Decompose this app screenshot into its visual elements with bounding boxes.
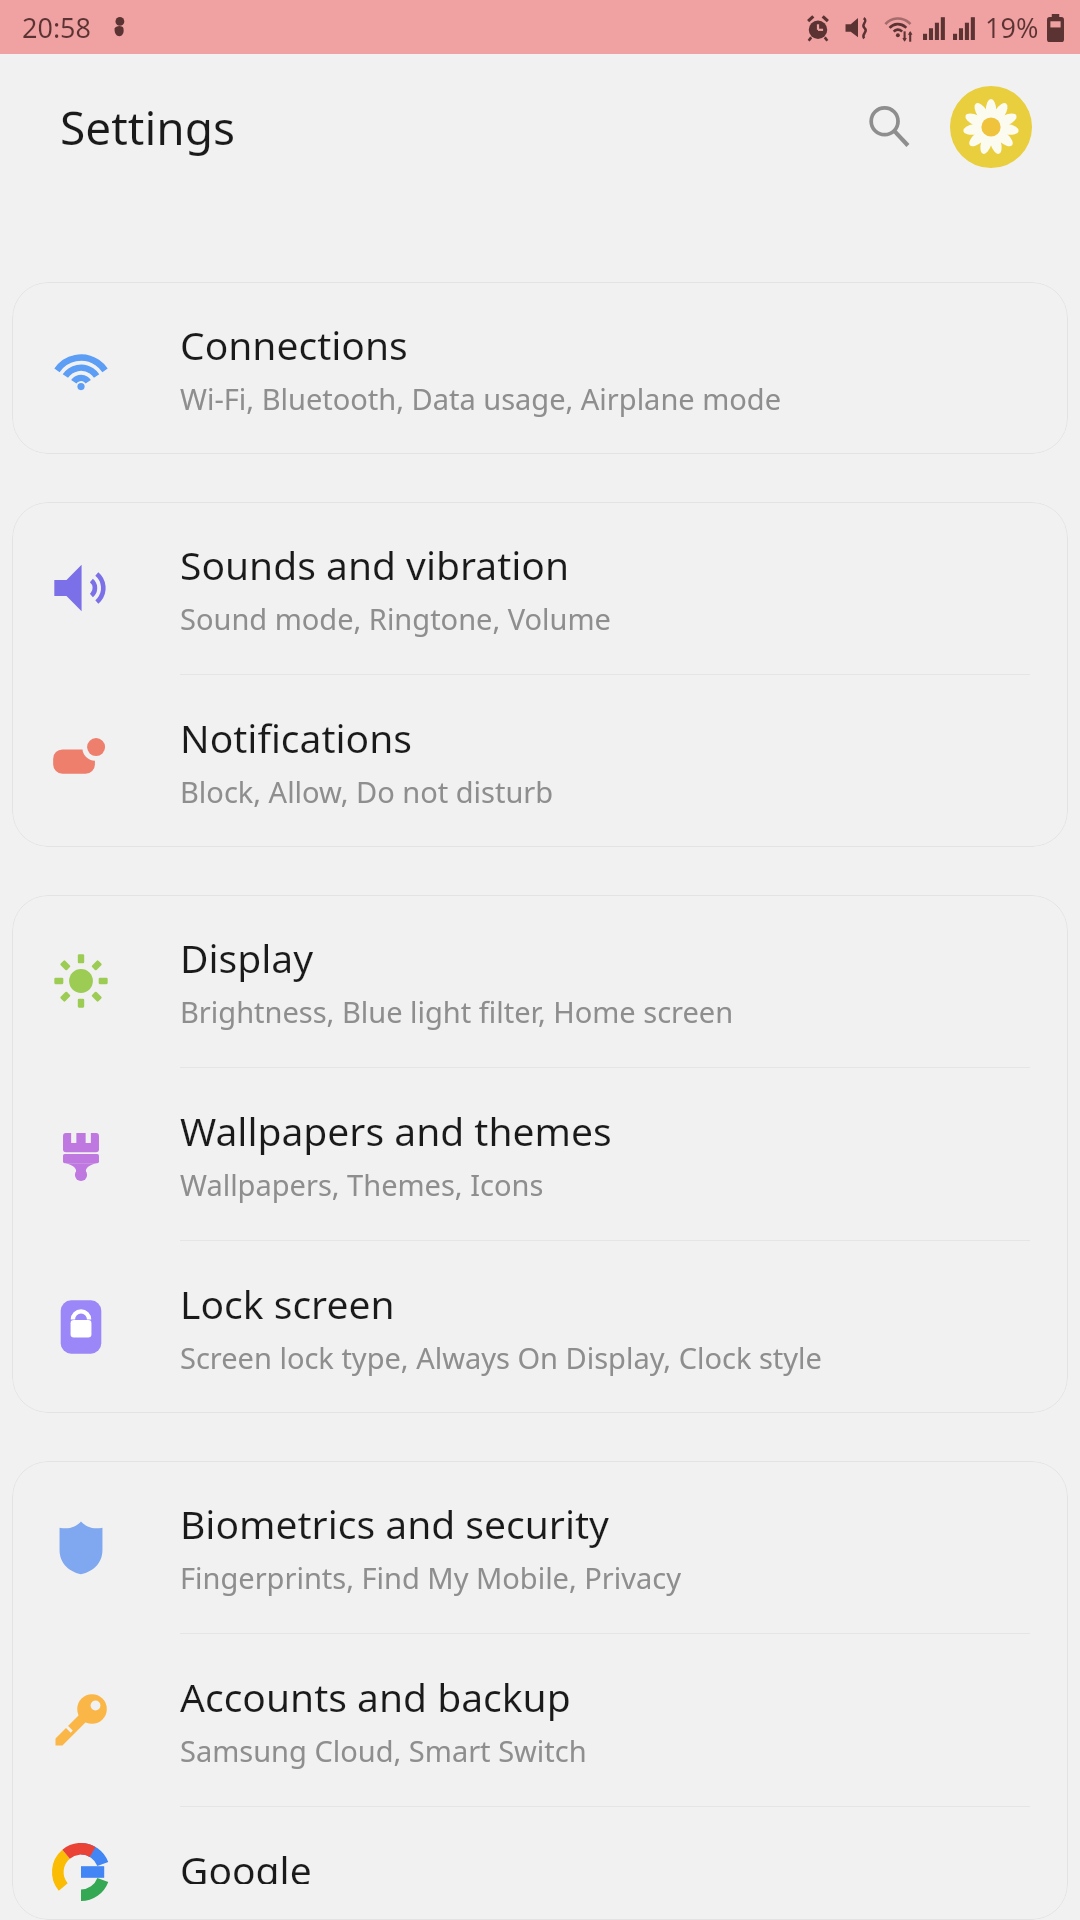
button[interactable]: Notifications: [12, 675, 1068, 847]
button[interactable]: Account profile: [950, 86, 1032, 168]
staticText: Notifications: [180, 711, 412, 764]
staticText: Sound mode, Ringtone, Volume: [180, 599, 611, 638]
button[interactable]: Accounts and backup: [12, 1634, 1068, 1806]
button[interactable]: Lock screen: [12, 1241, 1068, 1413]
button[interactable]: Sounds and vibration: [12, 502, 1068, 674]
staticText: Fingerprints, Find My Mobile, Privacy: [180, 1558, 682, 1597]
staticText: 20:58: [22, 9, 92, 46]
staticText: Connections: [180, 318, 408, 371]
staticText: Wallpapers and themes: [180, 1104, 612, 1157]
staticText: Display: [180, 931, 314, 984]
staticText: Sounds and vibration: [180, 538, 570, 591]
button[interactable]: Display: [12, 895, 1068, 1067]
button[interactable]: Wallpapers and themes: [12, 1068, 1068, 1240]
staticText: 19%: [985, 9, 1039, 46]
button[interactable]: Search: [854, 92, 924, 162]
button[interactable]: Biometrics and security: [12, 1461, 1068, 1633]
staticText: Screen lock type, Always On Display, Clo…: [180, 1338, 822, 1377]
staticText: Settings: [60, 96, 236, 159]
staticText: Google: [180, 1843, 312, 1884]
staticText: Samsung Cloud, Smart Switch: [180, 1731, 587, 1770]
staticText: Biometrics and security: [180, 1497, 610, 1550]
button[interactable]: Connections: [12, 282, 1068, 454]
button[interactable]: Google: [12, 1807, 1068, 1920]
staticText: Block, Allow, Do not disturb: [180, 772, 554, 811]
staticText: Brightness, Blue light filter, Home scre…: [180, 992, 734, 1031]
staticText: Wallpapers, Themes, Icons: [180, 1165, 544, 1204]
staticText: Lock screen: [180, 1277, 395, 1330]
staticText: Wi-Fi, Bluetooth, Data usage, Airplane m…: [180, 379, 782, 418]
staticText: Accounts and backup: [180, 1670, 571, 1723]
